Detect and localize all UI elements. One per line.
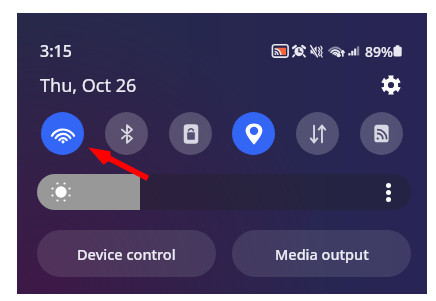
staticText: 3:15: [40, 40, 72, 62]
button[interactable]: Wi-Fi: [41, 112, 84, 155]
button[interactable]: Brightness: [37, 174, 411, 210]
button[interactable]: Settings: [374, 68, 408, 102]
button[interactable]: Bluetooth: [105, 112, 148, 155]
button[interactable]: Location: [232, 112, 275, 155]
button[interactable]: Screen lock: [169, 112, 212, 155]
staticText: Media output: [275, 244, 369, 264]
staticText: Device control: [77, 244, 176, 264]
staticText: Thu, Oct 26: [40, 73, 137, 98]
button[interactable]: Mobile data: [296, 112, 339, 155]
button[interactable]: Media output: [232, 230, 411, 277]
button[interactable]: Screen cast: [360, 112, 403, 155]
staticText: 89%: [365, 42, 393, 61]
button[interactable]: Device control: [37, 230, 216, 277]
